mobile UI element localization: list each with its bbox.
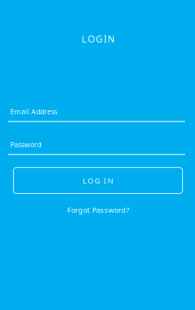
- staticText: L O G I N: [82, 175, 113, 186]
- staticText: Email Address: [10, 107, 57, 116]
- staticText: Password: [10, 140, 41, 149]
- staticText: L O G I N: [81, 33, 114, 45]
- button[interactable]: Forgot Password?: [43, 204, 153, 216]
- button[interactable]: L O G I N: [13, 167, 182, 193]
- staticText: Forgot Password?: [67, 205, 129, 215]
